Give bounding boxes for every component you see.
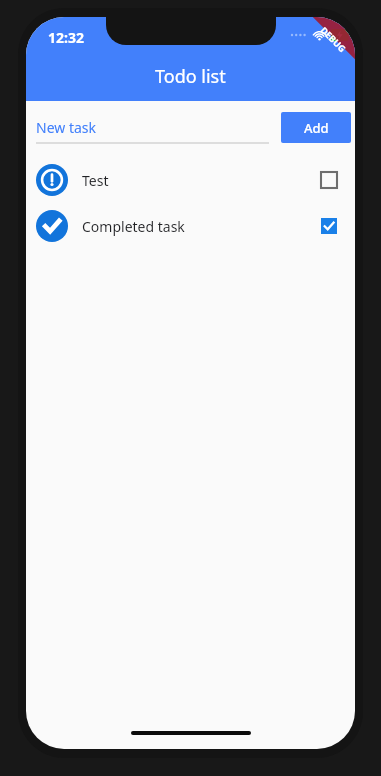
staticText: DEBUG (318, 24, 349, 54)
button[interactable]: Mark complete (315, 166, 343, 194)
staticText: New task (36, 118, 96, 137)
button[interactable]: Completed task (26, 203, 355, 249)
staticText: Test (82, 171, 315, 190)
button[interactable]: Add (281, 112, 351, 143)
button[interactable]: New task (36, 112, 273, 142)
staticText: Todo list (155, 64, 226, 89)
button[interactable]: Test (26, 157, 355, 203)
button[interactable]: Mark incomplete (315, 212, 343, 240)
staticText: 12:32 (48, 28, 84, 47)
staticText: Completed task (82, 217, 315, 236)
staticText: Add (304, 119, 329, 137)
